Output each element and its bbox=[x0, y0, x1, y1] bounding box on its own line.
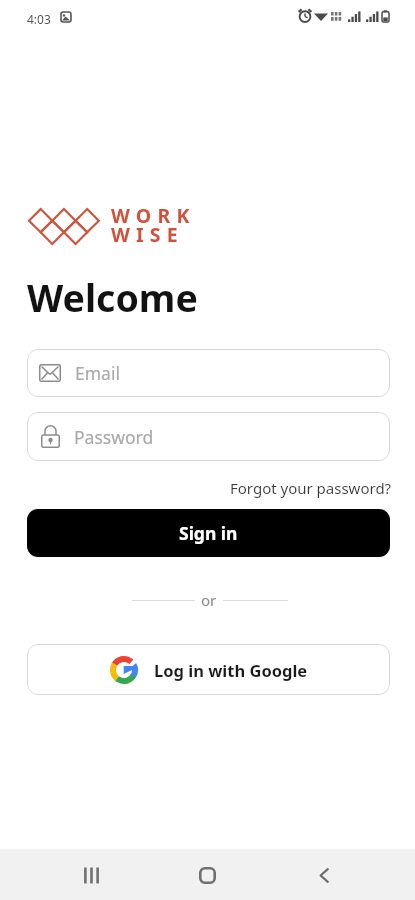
staticText: Log in with Google bbox=[154, 659, 308, 681]
staticText: Password bbox=[74, 425, 154, 449]
button[interactable]: Forgot your password? bbox=[227, 475, 395, 501]
button[interactable]: Home bbox=[190, 858, 224, 892]
staticText: 4:03 bbox=[27, 11, 51, 27]
button[interactable]: Password bbox=[27, 412, 390, 461]
button[interactable]: Recent apps bbox=[74, 858, 108, 892]
staticText: Welcome bbox=[27, 272, 198, 323]
button[interactable]: Log in with Google bbox=[27, 644, 390, 695]
staticText: or bbox=[201, 590, 217, 610]
staticText: Sign in bbox=[179, 521, 238, 545]
button[interactable]: Email bbox=[27, 349, 390, 397]
staticText: Forgot your password? bbox=[230, 478, 392, 498]
staticText: WORK bbox=[111, 202, 196, 229]
staticText: Email bbox=[75, 361, 120, 385]
button[interactable]: Back bbox=[308, 859, 340, 891]
button[interactable]: Sign in bbox=[27, 509, 390, 557]
staticText: WISE bbox=[111, 221, 184, 248]
